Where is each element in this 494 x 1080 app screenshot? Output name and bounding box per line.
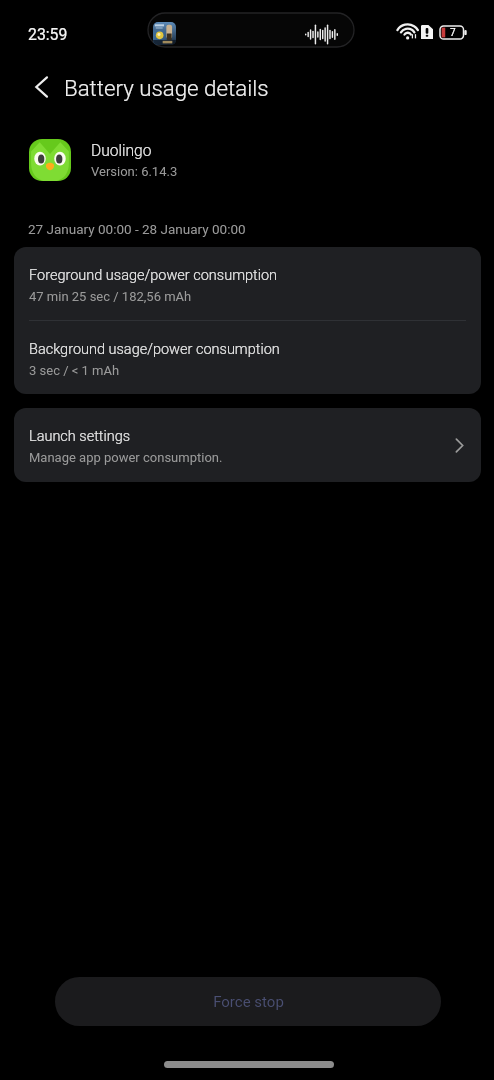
- staticText: Foreground usage/power consumption: [29, 267, 278, 284]
- button[interactable]: Launch settings: [14, 408, 481, 482]
- staticText: Force stop: [213, 993, 284, 1011]
- button[interactable]: Back: [23, 69, 59, 105]
- staticText: 7: [450, 27, 456, 39]
- staticText: Background usage/power consumption: [29, 341, 280, 358]
- staticText: Launch settings: [29, 428, 131, 445]
- staticText: 3 sec / < 1 mAh: [29, 363, 120, 378]
- staticText: 47 min 25 sec / 182,56 mAh: [29, 289, 192, 304]
- staticText: Manage app power consumption.: [29, 450, 223, 465]
- staticText: 27 January 00:00 - 28 January 00:00: [28, 221, 246, 237]
- staticText: Battery usage details: [64, 75, 269, 101]
- button[interactable]: Now playing: [148, 13, 354, 47]
- staticText: Version: 6.14.3: [91, 164, 178, 179]
- button[interactable]: Foreground usage/power consumption: [14, 247, 481, 320]
- staticText: 23:59: [28, 25, 68, 44]
- staticText: Duolingo: [91, 142, 152, 160]
- button[interactable]: Background usage/power consumption: [14, 321, 481, 394]
- button[interactable]: Force stop: [55, 977, 441, 1026]
